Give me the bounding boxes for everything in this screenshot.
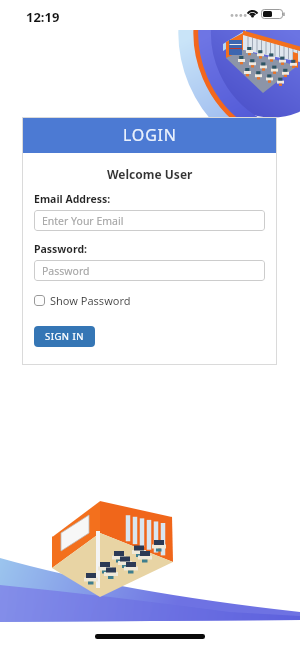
button[interactable]: SIGN IN xyxy=(34,326,95,347)
staticText: Email Address: xyxy=(34,192,111,206)
staticText: Show Password xyxy=(50,293,131,308)
button[interactable]: Show Password xyxy=(34,293,131,308)
staticText: Password xyxy=(42,264,90,278)
button[interactable]: Enter Your Email xyxy=(34,210,265,231)
staticText: SIGN IN xyxy=(45,330,84,343)
staticText: 12:19 xyxy=(26,8,60,26)
button[interactable]: Password xyxy=(34,260,265,281)
staticText: LOGIN xyxy=(123,124,177,146)
staticText: Welcome User xyxy=(107,166,193,182)
staticText: Enter Your Email xyxy=(42,214,124,228)
staticText: Password: xyxy=(34,242,87,256)
